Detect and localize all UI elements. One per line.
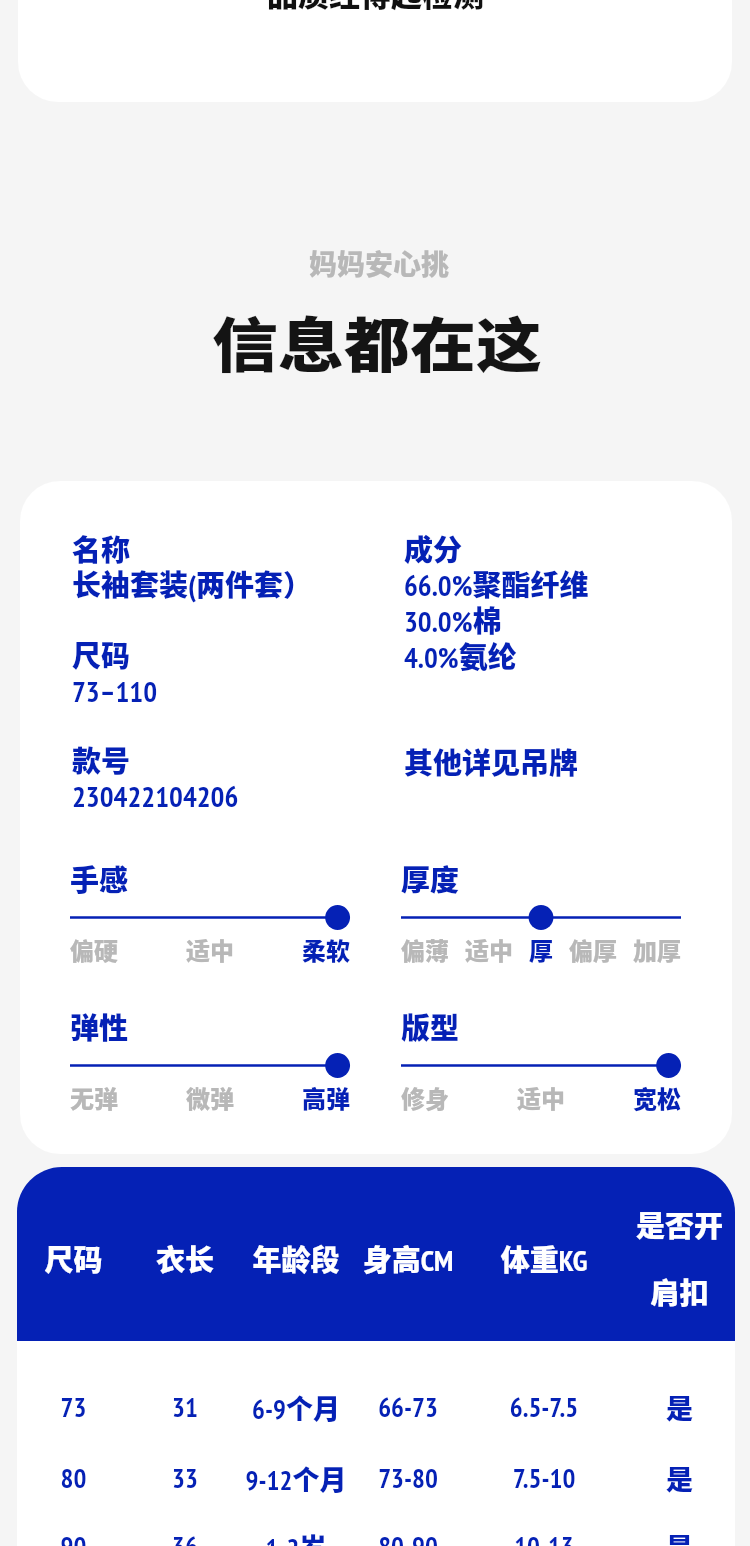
staticText: 加厚 (633, 932, 681, 967)
staticText: 适中 (186, 932, 234, 967)
staticText: 年龄段 (240, 1237, 352, 1279)
button[interactable]: 版型: 宽松 (401, 1005, 681, 1047)
staticText: 成分 66.0%聚酯纤维 30.0%棉 4.0%氨纶 其他详见吊牌 (404, 527, 589, 782)
button[interactable]: 手感: 柔软 (70, 857, 350, 899)
staticText: 无弹 (70, 1080, 118, 1115)
button[interactable]: 厚度: 厚 (401, 857, 681, 899)
staticText: 柔软 (302, 932, 350, 967)
staticText: 80-90 (352, 1529, 464, 1546)
staticText: 80 (17, 1461, 130, 1496)
staticText: 厚 (529, 932, 553, 967)
staticText: 偏厚 (569, 932, 617, 967)
staticText: 偏薄 (401, 932, 449, 967)
staticText: 适中 (465, 932, 513, 967)
staticText: 9-12个月 (240, 1459, 352, 1498)
staticText: 厚度 (401, 857, 460, 899)
staticText: 33 (130, 1461, 240, 1496)
staticText: 弹性 (70, 1005, 129, 1047)
staticText: 73-80 (352, 1461, 464, 1496)
staticText: 是 (624, 1388, 735, 1427)
staticText: 10-13 (464, 1529, 624, 1546)
staticText: 90 (17, 1529, 130, 1546)
staticText: 版型 (401, 1005, 460, 1047)
button[interactable]: 品质经得起检测 (18, 0, 732, 102)
staticText: 名称 长袖套装(两件套） 尺码 73–110 款号 230422104206 (72, 527, 313, 815)
staticText: 是 (624, 1459, 735, 1498)
button[interactable]: 尺码 (17, 1167, 735, 1546)
staticText: 修身 (401, 1080, 449, 1115)
staticText: 是 (624, 1527, 735, 1546)
staticText: 1-2岁 (240, 1527, 352, 1546)
staticText: 高弹 (302, 1080, 350, 1115)
staticText: 36 (130, 1529, 240, 1546)
staticText: 品质经得起检测 (267, 0, 484, 15)
staticText: 66-73 (352, 1390, 464, 1425)
staticText: 6-9个月 (240, 1388, 352, 1427)
staticText: 微弹 (186, 1080, 234, 1115)
staticText: 衣长 (130, 1237, 240, 1279)
button[interactable]: 弹性: 高弹 (70, 1005, 350, 1047)
staticText: 体重KG (464, 1237, 624, 1279)
button[interactable]: 名称 长袖套装(两件套） 尺码 73–110 款号 230422104206 (20, 481, 732, 1154)
staticText: 6.5-7.5 (464, 1390, 624, 1425)
staticText: 妈妈安心挑 (4, 243, 750, 284)
staticText: 是否开肩扣 (624, 1203, 735, 1313)
staticText: 偏硬 (70, 932, 118, 967)
staticText: 手感 (70, 857, 129, 899)
staticText: 73 (17, 1390, 130, 1425)
staticText: 适中 (517, 1080, 565, 1115)
staticText: 信息都在这 (2, 298, 750, 384)
staticText: 宽松 (633, 1080, 681, 1115)
staticText: 尺码 (17, 1237, 130, 1279)
staticText: 31 (130, 1390, 240, 1425)
staticText: 身高CM (352, 1237, 464, 1279)
staticText: 7.5-10 (464, 1461, 624, 1496)
